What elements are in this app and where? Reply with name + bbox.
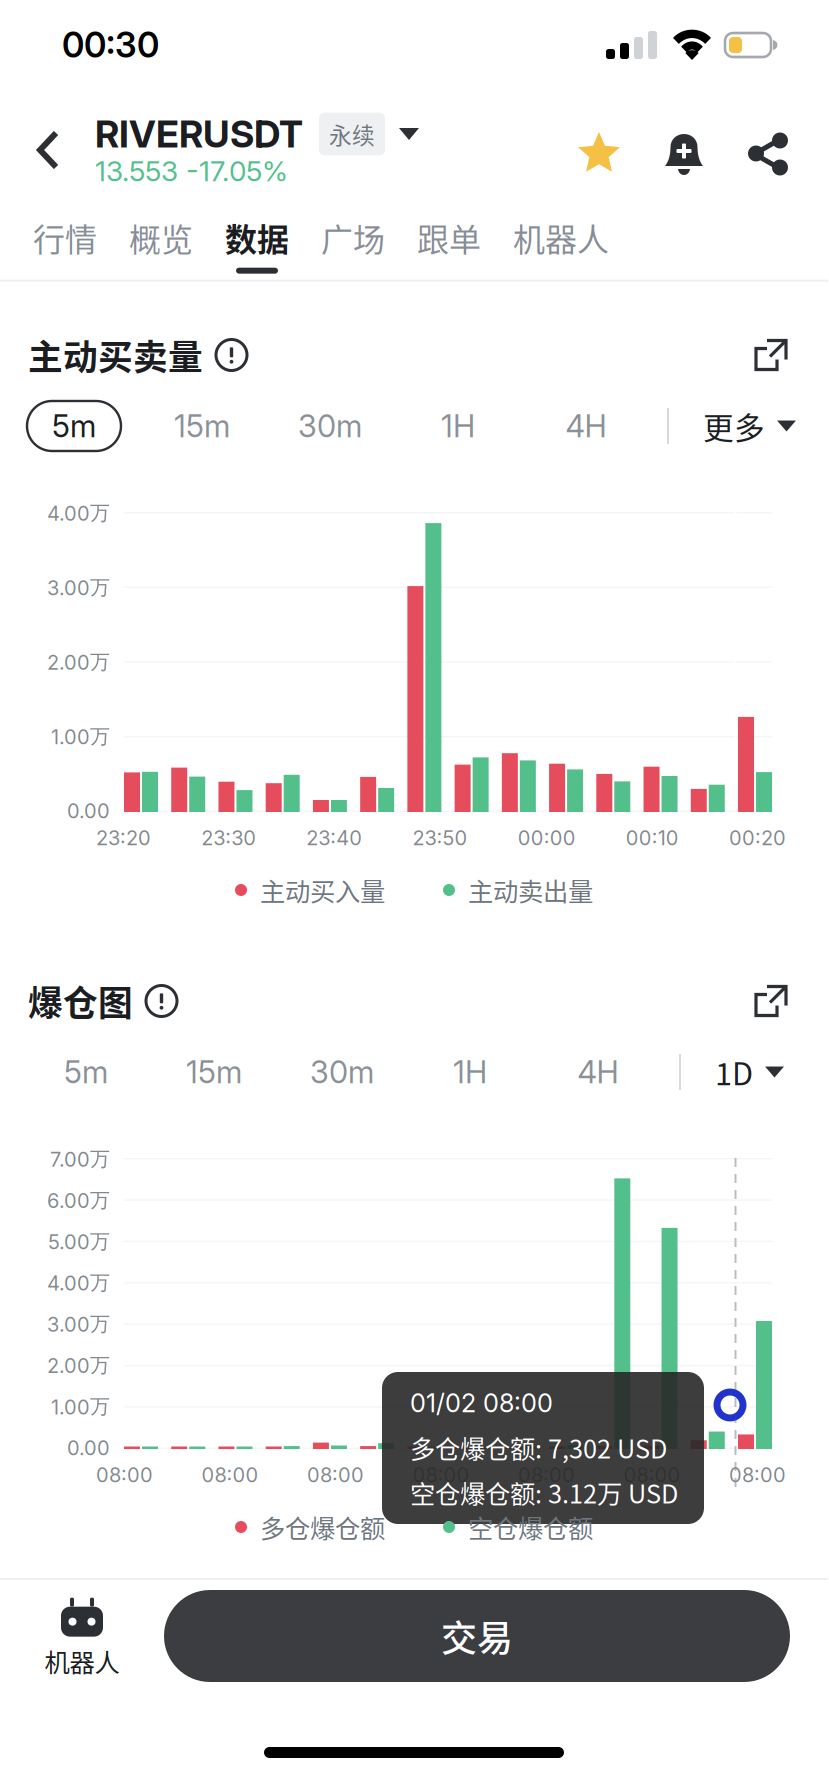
button[interactable]: 数据: [209, 200, 305, 280]
button[interactable]: Price alert: [656, 123, 712, 185]
button[interactable]: 15m: [155, 401, 249, 451]
staticText: 空仓爆仓额: [468, 1509, 593, 1545]
button[interactable]: 永续: [303, 113, 419, 155]
staticText: 1.00万: [51, 724, 110, 749]
staticText: 4.00万: [47, 500, 110, 526]
button[interactable]: 15m: [167, 1047, 261, 1097]
staticText: 1.00万: [51, 1394, 110, 1419]
button[interactable]: Share: [738, 123, 798, 184]
staticText: 4H: [577, 1053, 618, 1090]
staticText: 00:20: [729, 826, 786, 850]
button[interactable]: 1H: [411, 401, 505, 451]
staticText: 5m: [64, 1053, 108, 1090]
staticText: 30m: [310, 1053, 374, 1090]
staticText: 爆仓图: [28, 976, 133, 1026]
staticText: 00:10: [626, 826, 679, 850]
staticText: 08:00: [201, 1463, 258, 1487]
button[interactable]: Favorite: [568, 124, 630, 184]
staticText: 7.00万: [50, 1146, 110, 1172]
button[interactable]: 交易: [164, 1590, 790, 1682]
staticText: 更多: [703, 404, 765, 448]
staticText: 23:50: [412, 826, 467, 850]
staticText: 08:00: [412, 1463, 469, 1487]
button[interactable]: 机器人: [0, 1584, 164, 1688]
staticText: 1D: [715, 1050, 753, 1094]
staticText: 0.00: [67, 799, 110, 823]
button[interactable]: 概览: [113, 200, 209, 280]
staticText: 主动卖出量: [468, 872, 593, 908]
staticText: 23:40: [306, 826, 362, 850]
staticText: 行情: [33, 214, 97, 261]
button[interactable]: 行情: [17, 200, 113, 280]
staticText: 6.00万: [47, 1188, 110, 1213]
staticText: 多仓爆仓额: 7,302 USD: [410, 1429, 667, 1466]
staticText: 23:20: [96, 826, 151, 850]
staticText: 13.553 -17.05%: [95, 154, 288, 188]
staticText: RIVERUSDT: [95, 111, 303, 157]
staticText: 交易: [441, 1610, 513, 1662]
staticText: 00:00: [518, 826, 576, 850]
staticText: 08:00: [623, 1463, 680, 1487]
button[interactable]: 1H: [423, 1047, 517, 1097]
staticText: 数据: [225, 214, 289, 261]
staticText: 多仓爆仓额: [260, 1509, 385, 1545]
staticText: 2.00万: [47, 1353, 110, 1378]
staticText: 广场: [321, 214, 385, 261]
staticText: 2.00万: [47, 649, 110, 675]
staticText: 00:30: [62, 24, 159, 66]
staticText: 机器人: [44, 1643, 119, 1679]
button[interactable]: Back: [0, 100, 95, 180]
staticText: 跟单: [417, 214, 481, 261]
staticText: 15m: [174, 407, 230, 444]
button[interactable]: Open full chart: [748, 978, 794, 1023]
button[interactable]: 4H: [539, 401, 633, 451]
button[interactable]: 30m: [295, 1047, 389, 1097]
staticText: 4H: [565, 407, 606, 444]
button[interactable]: 跟单: [401, 200, 497, 280]
staticText: 3.00万: [47, 575, 110, 600]
staticText: 机器人: [513, 214, 609, 261]
staticText: 1H: [453, 1053, 487, 1090]
staticText: 08:00: [518, 1463, 575, 1487]
button[interactable]: 1D: [715, 1047, 784, 1097]
staticText: 15m: [186, 1053, 242, 1090]
staticText: 23:30: [201, 826, 256, 850]
staticText: 3.00万: [47, 1311, 110, 1337]
staticText: 空仓爆仓额: 3.12万 USD: [410, 1474, 678, 1511]
staticText: 08:00: [96, 1463, 153, 1487]
staticText: 4.00万: [47, 1270, 110, 1295]
button[interactable]: 广场: [305, 200, 401, 280]
staticText: 01/02 08:00: [410, 1388, 553, 1418]
button[interactable]: 5m: [27, 401, 121, 451]
staticText: 08:00: [307, 1463, 364, 1487]
staticText: 主动买入量: [260, 872, 385, 908]
staticText: 08:00: [729, 1463, 786, 1487]
staticText: 永续: [329, 118, 375, 150]
staticText: 5.00万: [48, 1229, 110, 1254]
button[interactable]: 更多: [703, 401, 796, 451]
button[interactable]: 5m: [39, 1047, 133, 1097]
button[interactable]: 机器人: [497, 200, 625, 280]
button[interactable]: Open full chart: [748, 332, 794, 377]
staticText: 概览: [129, 214, 193, 261]
staticText: 5m: [52, 407, 96, 444]
staticText: 30m: [298, 407, 362, 444]
staticText: 0.00: [67, 1436, 110, 1460]
staticText: 1H: [441, 407, 475, 444]
staticText: 主动买卖量: [28, 330, 203, 380]
button[interactable]: 30m: [283, 401, 377, 451]
button[interactable]: 4H: [551, 1047, 645, 1097]
